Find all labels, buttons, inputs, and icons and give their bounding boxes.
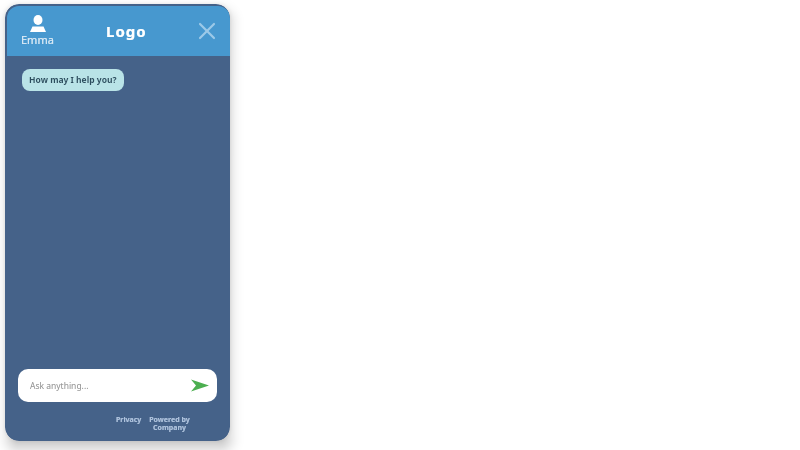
button[interactable]: How may I help you? (22, 69, 124, 91)
staticText: How may I help you? (29, 74, 117, 86)
staticText: Ask anything... (30, 380, 89, 392)
button[interactable]: Emma (21, 15, 54, 47)
staticText: Logo (106, 21, 147, 41)
button[interactable] (196, 20, 218, 42)
staticText: Emma (21, 32, 54, 47)
button[interactable]: Privacy (116, 415, 142, 425)
button[interactable]: Powered by Company (149, 415, 190, 432)
button[interactable]: Ask anything... (18, 369, 217, 402)
